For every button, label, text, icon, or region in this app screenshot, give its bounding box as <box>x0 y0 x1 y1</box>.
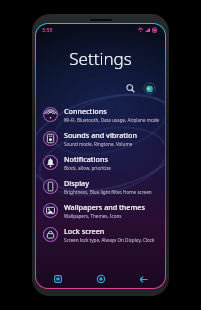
staticText: Settings <box>36 47 165 70</box>
button[interactable]: Recents <box>36 270 79 288</box>
button[interactable]: Back <box>122 270 165 288</box>
button[interactable]: Home <box>79 270 122 288</box>
button[interactable]: Wallpapers and themes <box>36 198 165 222</box>
button[interactable]: Account <box>143 82 156 95</box>
staticText: Display <box>64 178 89 188</box>
button[interactable]: Lock screen <box>36 222 165 246</box>
button[interactable]: Sounds and vibration <box>36 126 165 150</box>
button[interactable]: Connections <box>36 102 165 126</box>
staticText: Lock screen <box>64 226 105 236</box>
staticText: Sound mode, Ringtone, Volume <box>64 141 133 147</box>
staticText: Wi-Fi, Bluetooth, Data usage, Airplane m… <box>64 117 160 123</box>
staticText: Brightness, Blue light filter, Home scre… <box>64 189 152 195</box>
button[interactable]: Display <box>36 174 165 198</box>
staticText: Sounds and vibration <box>64 130 137 140</box>
staticText: Wallpapers and themes <box>64 202 145 212</box>
staticText: 3:55 <box>42 26 53 33</box>
button[interactable]: Search <box>124 82 137 95</box>
staticText: Block, allow, prioritize <box>64 165 111 171</box>
staticText: Wallpapers, Themes, Icons <box>64 213 122 219</box>
staticText: Connections <box>64 106 107 116</box>
button[interactable]: Notifications <box>36 150 165 174</box>
staticText: Screen lock type, Always On Display, Clo… <box>64 237 155 243</box>
staticText: Notifications <box>64 154 108 164</box>
